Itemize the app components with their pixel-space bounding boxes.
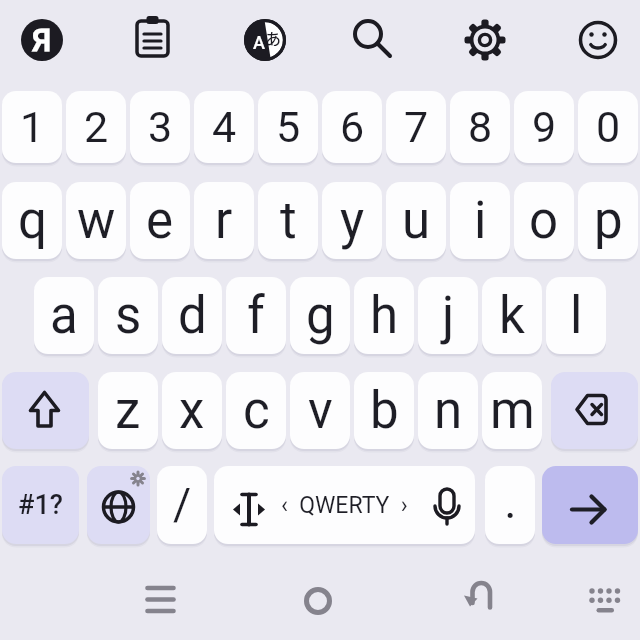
button[interactable] (2, 372, 89, 449)
staticText: a (50, 286, 78, 346)
staticText: 1 (20, 102, 45, 152)
staticText: g (306, 286, 335, 346)
staticText: o (529, 191, 559, 251)
staticText: 0 (596, 102, 621, 152)
button[interactable]: 1 (2, 91, 62, 163)
button[interactable]: v (290, 372, 350, 449)
button[interactable]: 0 (578, 91, 638, 163)
staticText: あ (265, 26, 282, 46)
button[interactable]: y (322, 182, 382, 259)
staticText: 6 (340, 102, 365, 152)
button[interactable]: l (546, 277, 606, 354)
staticText: j (442, 286, 455, 346)
button[interactable]: h (354, 277, 414, 354)
button[interactable]: s (98, 277, 158, 354)
staticText: #1? (18, 489, 63, 521)
staticText: n (434, 381, 463, 441)
button[interactable]: q (2, 182, 62, 259)
staticText: 7 (404, 102, 429, 152)
button[interactable]: 6 (322, 91, 382, 163)
staticText: ‹ QWERTY › (281, 492, 408, 519)
button[interactable]: . (485, 466, 535, 544)
button[interactable]: d (162, 277, 222, 354)
button[interactable]: u (386, 182, 446, 259)
button[interactable]: 4 (194, 91, 254, 163)
button[interactable]: b (354, 372, 414, 449)
button[interactable]: ‹ QWERTY › (214, 466, 475, 544)
staticText: y (340, 191, 365, 251)
button[interactable]: z (98, 372, 158, 449)
button[interactable]: i (450, 182, 510, 259)
button[interactable]: 9 (514, 91, 574, 163)
staticText: 8 (468, 102, 493, 152)
staticText: e (146, 191, 174, 251)
staticText: 3 (148, 102, 173, 152)
button[interactable]: 8 (450, 91, 510, 163)
staticText: 9 (532, 102, 557, 152)
staticText: h (370, 286, 399, 346)
staticText: Я (32, 22, 52, 58)
button[interactable]: 5 (258, 91, 318, 163)
staticText: 4 (212, 102, 237, 152)
button[interactable] (542, 466, 638, 544)
button[interactable]: a (34, 277, 94, 354)
button[interactable]: m (482, 372, 542, 449)
button[interactable]: 7 (386, 91, 446, 163)
staticText: l (570, 286, 583, 346)
button[interactable] (87, 466, 150, 544)
button[interactable]: x (162, 372, 222, 449)
staticText: i (474, 191, 487, 251)
staticText: p (594, 191, 623, 251)
staticText: k (499, 286, 525, 346)
button[interactable] (551, 372, 638, 449)
button[interactable]: o (514, 182, 574, 259)
button[interactable]: t (258, 182, 318, 259)
staticText: c (243, 381, 270, 441)
button[interactable]: 2 (66, 91, 126, 163)
button[interactable]: p (578, 182, 638, 259)
button[interactable]: r (194, 182, 254, 259)
button[interactable]: 3 (130, 91, 190, 163)
staticText: s (115, 286, 142, 346)
button[interactable]: / (157, 466, 207, 544)
staticText: u (402, 191, 431, 251)
button[interactable]: w (66, 182, 126, 259)
staticText: A (253, 32, 265, 53)
staticText: d (178, 286, 207, 346)
button[interactable]: c (226, 372, 286, 449)
button[interactable]: #1? (2, 466, 79, 544)
staticText: f (247, 286, 265, 346)
staticText: r (215, 191, 233, 251)
staticText: v (308, 381, 333, 441)
staticText: q (18, 191, 47, 251)
staticText: b (370, 381, 399, 441)
staticText: / (173, 479, 192, 531)
staticText: w (77, 191, 116, 251)
button[interactable]: g (290, 277, 350, 354)
staticText: 2 (84, 102, 109, 152)
staticText: z (115, 381, 141, 441)
button[interactable]: f (226, 277, 286, 354)
button[interactable]: k (482, 277, 542, 354)
staticText: x (179, 381, 205, 441)
button[interactable]: e (130, 182, 190, 259)
button[interactable]: n (418, 372, 478, 449)
staticText: t (280, 191, 297, 251)
staticText: . (505, 483, 516, 528)
button[interactable]: j (418, 277, 478, 354)
staticText: 5 (276, 102, 301, 152)
staticText: m (490, 381, 535, 441)
